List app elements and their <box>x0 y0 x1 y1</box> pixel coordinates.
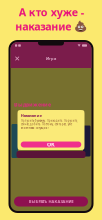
button[interactable]: ВЫБРАТЬ НАКАЗАНИЕ <box>14 196 88 206</box>
button[interactable]: ОК <box>21 141 81 147</box>
staticText: Выдвижение <box>14 101 51 108</box>
button[interactable]: Close <box>13 54 21 63</box>
staticText: Игра <box>46 56 56 61</box>
staticText: Получить бумажку. Приходите. Поручите, с… <box>21 119 78 130</box>
staticText: Наказание <box>21 113 42 118</box>
staticText: ОК <box>47 141 55 148</box>
staticText: А кто хуже - наказание 💩 <box>15 5 87 33</box>
staticText: ВЫБРАТЬ НАКАЗАНИЕ <box>28 199 73 204</box>
